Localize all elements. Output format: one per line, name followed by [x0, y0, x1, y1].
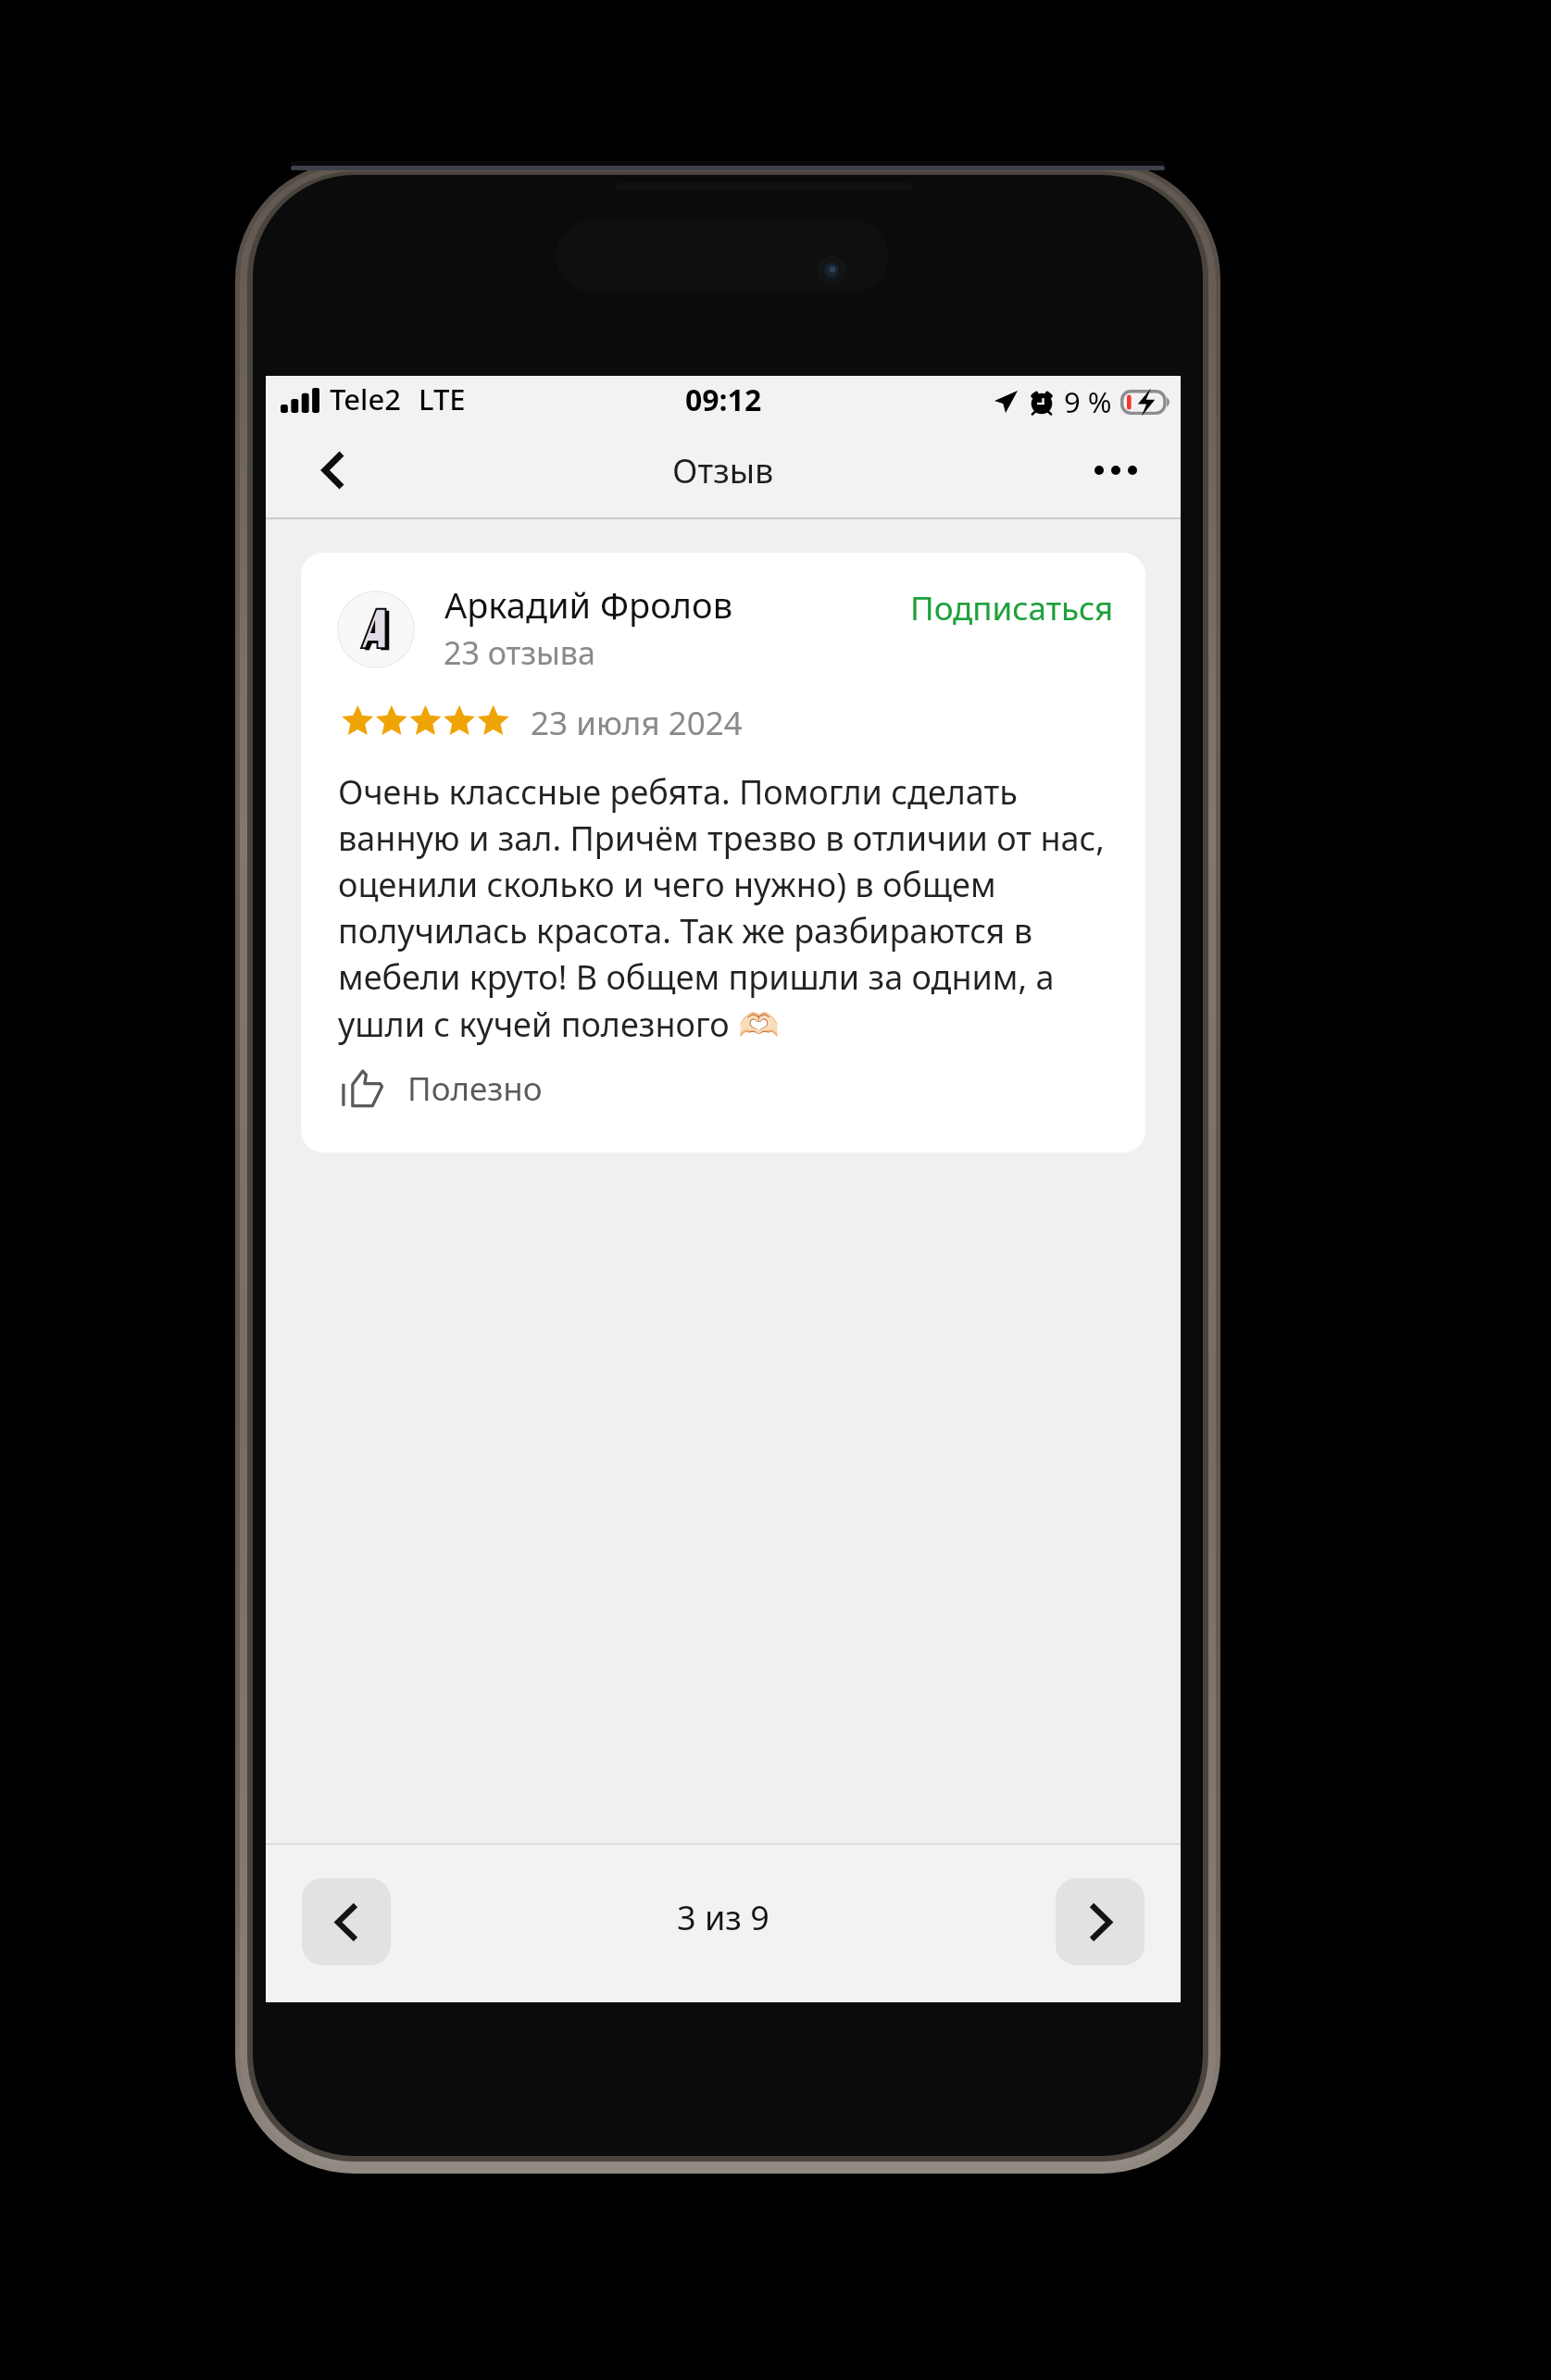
- staticText: 23 отзыва: [444, 631, 595, 674]
- staticText: 23 июля 2024: [531, 701, 743, 745]
- button[interactable]: Подписаться: [903, 579, 1121, 638]
- button[interactable]: Back: [303, 435, 364, 505]
- staticText: LTE: [419, 380, 466, 418]
- staticText: 09:12: [685, 380, 762, 420]
- staticText: Tele2: [330, 380, 401, 418]
- staticText: Очень классные ребята. Помогли сделать в…: [338, 769, 1120, 1046]
- staticText: Аркадий Фролов: [444, 580, 733, 629]
- staticText: Отзыв: [672, 448, 774, 493]
- staticText: Подписаться: [910, 586, 1114, 630]
- button[interactable]: Previous review: [302, 1878, 391, 1965]
- button[interactable]: More options: [1076, 435, 1156, 505]
- staticText: 9 %: [1064, 382, 1112, 421]
- button[interactable]: Полезно: [334, 1059, 552, 1118]
- staticText: 3 из 9: [677, 1895, 769, 1940]
- button[interactable]: Next review: [1056, 1878, 1144, 1965]
- staticText: Полезно: [407, 1066, 543, 1111]
